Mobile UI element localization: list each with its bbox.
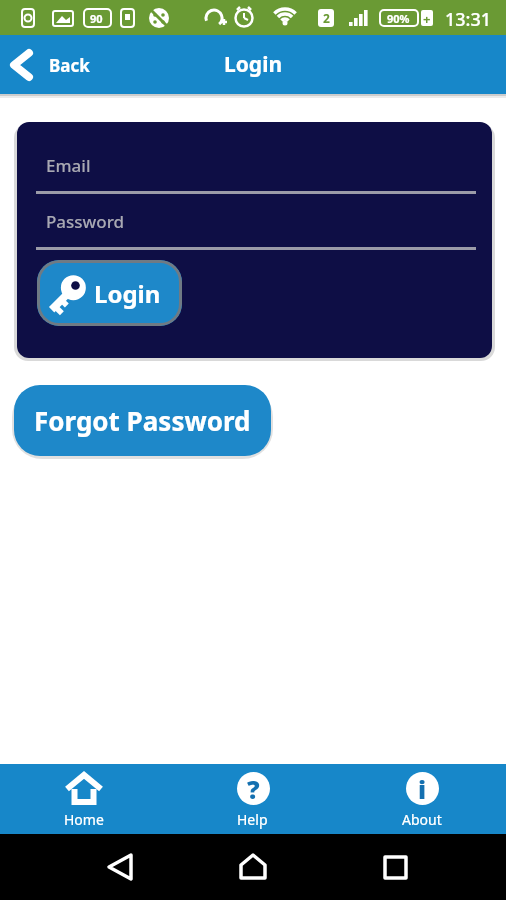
staticText: + bbox=[423, 10, 431, 28]
staticText: Home bbox=[64, 810, 104, 829]
staticText: 90% bbox=[387, 11, 410, 26]
staticText: About bbox=[402, 810, 442, 829]
button[interactable]: i bbox=[337, 764, 506, 834]
button[interactable]: Password bbox=[36, 202, 476, 250]
staticText: Login bbox=[224, 50, 283, 79]
staticText: Login bbox=[94, 277, 161, 310]
button[interactable]: Back bbox=[0, 50, 90, 80]
button[interactable]: Home bbox=[0, 764, 168, 834]
staticText: Help bbox=[237, 810, 268, 829]
staticText: i bbox=[418, 772, 427, 805]
button[interactable]: Login bbox=[37, 260, 182, 326]
staticText: Password bbox=[46, 210, 125, 233]
staticText: 90 bbox=[90, 11, 103, 26]
staticText: 2 bbox=[323, 10, 330, 26]
button[interactable]: ? bbox=[168, 764, 337, 834]
staticText: Forgot Password bbox=[34, 403, 251, 438]
staticText: ? bbox=[247, 772, 260, 805]
button[interactable]: Forgot Password bbox=[14, 385, 271, 456]
staticText: Back bbox=[49, 54, 90, 77]
staticText: Email bbox=[46, 154, 91, 177]
staticText: 13:31 bbox=[445, 7, 492, 32]
button[interactable]: Email bbox=[36, 146, 476, 194]
